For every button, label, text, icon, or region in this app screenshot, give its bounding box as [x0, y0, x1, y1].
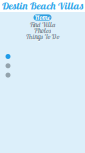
button[interactable]: Slide 3 — [5, 73, 10, 78]
staticText: Photos — [34, 27, 51, 35]
button[interactable]: Slide 1 — [5, 54, 10, 59]
staticText: Things To Do — [25, 33, 59, 42]
button[interactable]: Things To Do — [25, 34, 59, 40]
button[interactable]: Home — [33, 14, 51, 21]
staticText: Find Villa — [29, 20, 56, 29]
button[interactable]: Photos — [34, 28, 51, 34]
staticText: Things To Do — [25, 33, 59, 41]
staticText: Find Villa — [29, 21, 56, 29]
button[interactable]: Find Villa — [29, 22, 56, 28]
staticText: Destin Beach Villas — [1, 0, 83, 12]
staticText: Photos — [34, 27, 51, 35]
button[interactable]: Slide 2 — [5, 63, 10, 68]
staticText: Home — [34, 13, 50, 22]
